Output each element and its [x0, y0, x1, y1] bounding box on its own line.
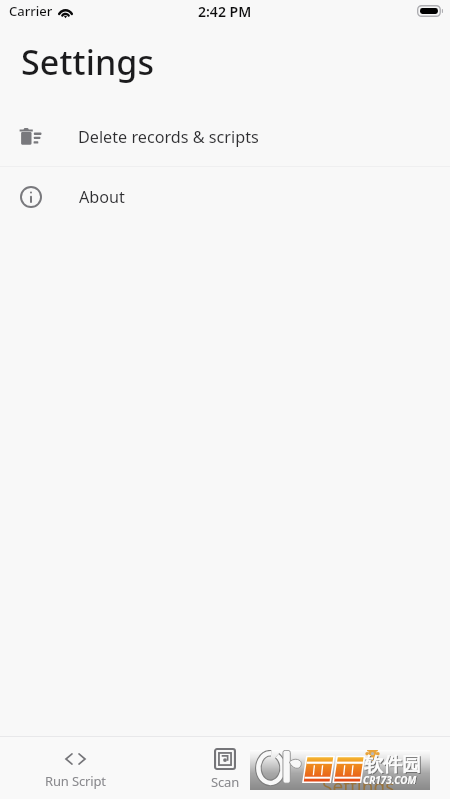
button[interactable]: Run Script: [0, 736, 150, 799]
staticText: CR173.COM: [364, 773, 418, 787]
button[interactable]: About: [0, 167, 450, 226]
staticText: CR173.COM: [363, 773, 417, 787]
staticText: Carrier: [9, 2, 53, 20]
button[interactable]: Delete records & scripts: [0, 107, 450, 166]
staticText: 2:42 PM: [198, 2, 252, 21]
staticText: 软件园: [365, 754, 422, 778]
staticText: Settings: [21, 39, 155, 85]
button[interactable]: [300, 736, 450, 799]
staticText: Scan: [211, 773, 240, 791]
other: Scan: [214, 748, 236, 770]
other: Run Script: [65, 753, 86, 765]
staticText: About: [79, 186, 125, 208]
button[interactable]: Scan: [150, 736, 300, 799]
staticText: Run Script: [45, 772, 106, 790]
staticText: 软件园: [364, 753, 421, 777]
staticText: Delete records & scripts: [78, 126, 259, 148]
staticText: Settings: [322, 774, 395, 790]
